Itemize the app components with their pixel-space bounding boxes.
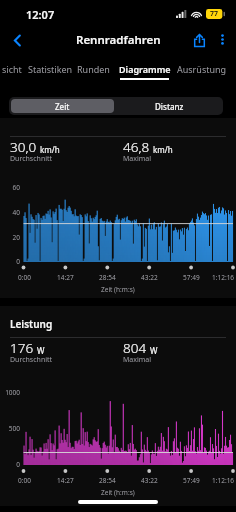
button[interactable]: More options bbox=[211, 28, 233, 50]
staticText: Distanz bbox=[155, 101, 184, 112]
button[interactable]: sicht bbox=[0, 56, 27, 80]
staticText: 0 bbox=[0, 460, 20, 469]
staticText: 28:54 bbox=[99, 476, 116, 485]
staticText: 60 bbox=[0, 183, 20, 192]
button[interactable]: Back bbox=[4, 27, 30, 53]
staticText: Durchschnitt bbox=[10, 154, 53, 164]
staticText: 0:00 bbox=[18, 273, 31, 282]
staticText: 1:12:16 bbox=[212, 476, 235, 485]
staticText: km/h bbox=[40, 144, 60, 155]
staticText: W bbox=[150, 345, 158, 356]
staticText: 0 bbox=[0, 257, 20, 266]
staticText: 1:12:16 bbox=[212, 273, 235, 282]
staticText: 1000 bbox=[0, 388, 20, 397]
staticText: Zeit bbox=[55, 101, 70, 112]
staticText: 30,0 bbox=[10, 138, 37, 156]
staticText: Maximal bbox=[123, 355, 152, 365]
staticText: Durchschnitt bbox=[10, 355, 53, 365]
staticText: 28:54 bbox=[99, 273, 116, 282]
staticText: Rennradfahren bbox=[76, 32, 161, 48]
staticText: Maximal bbox=[123, 154, 152, 164]
staticText: Zeit (h:m:s) bbox=[101, 488, 135, 497]
staticText: Leistung bbox=[10, 317, 53, 331]
staticText: 77 bbox=[210, 9, 219, 19]
staticText: 500 bbox=[0, 424, 20, 433]
button[interactable]: Share bbox=[187, 28, 211, 52]
staticText: Runden bbox=[77, 63, 110, 75]
staticText: 804 bbox=[123, 339, 147, 357]
staticText: 0:00 bbox=[18, 476, 31, 485]
staticText: 12:07 bbox=[26, 7, 55, 22]
button[interactable]: Statistiken bbox=[28, 56, 73, 80]
staticText: km/h bbox=[153, 144, 173, 155]
staticText: Statistiken bbox=[28, 63, 73, 75]
staticText: Ausrüstung bbox=[177, 63, 227, 75]
button[interactable]: Runden bbox=[77, 56, 110, 80]
staticText: 40 bbox=[0, 208, 20, 217]
staticText: 43:22 bbox=[141, 476, 158, 485]
button[interactable]: Distanz bbox=[116, 97, 223, 115]
staticText: 57:49 bbox=[183, 273, 200, 282]
button[interactable]: Diagramme bbox=[116, 56, 173, 80]
button[interactable]: Zeit bbox=[11, 99, 114, 113]
staticText: Diagramme bbox=[119, 63, 171, 75]
staticText: 14:27 bbox=[57, 273, 74, 282]
staticText: 20 bbox=[0, 233, 20, 242]
staticText: Zeit (h:m:s) bbox=[101, 285, 135, 294]
staticText: 176 bbox=[10, 339, 34, 357]
staticText: 46,8 bbox=[123, 138, 150, 156]
staticText: 14:27 bbox=[57, 476, 74, 485]
staticText: 57:49 bbox=[183, 476, 200, 485]
staticText: sicht bbox=[2, 63, 22, 75]
staticText: 43:22 bbox=[141, 273, 158, 282]
button[interactable]: Ausrüstung bbox=[173, 56, 230, 80]
staticText: W bbox=[37, 345, 45, 356]
